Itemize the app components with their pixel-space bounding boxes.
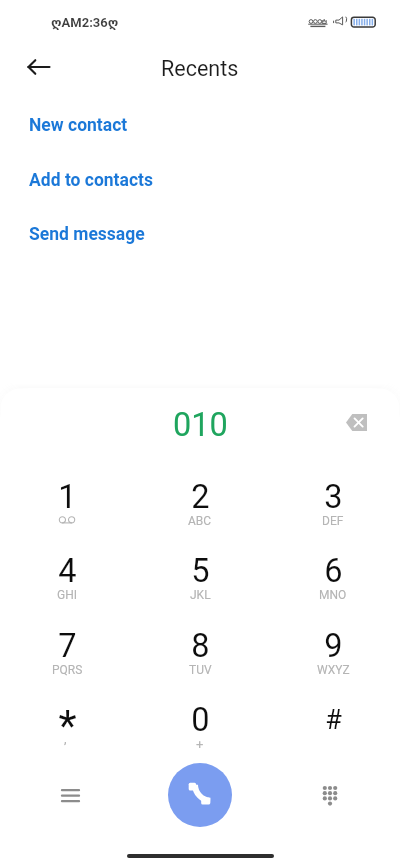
staticText: DEF — [322, 514, 344, 528]
staticText: Add to contacts — [29, 170, 153, 191]
staticText: 7 — [58, 627, 77, 665]
staticText: ABC — [188, 514, 212, 528]
button[interactable]: 7 — [1, 627, 133, 699]
staticText: JKL — [190, 588, 211, 602]
button[interactable]: Call — [168, 763, 232, 827]
staticText: 010 — [173, 406, 228, 444]
staticText: , — [64, 731, 67, 746]
button[interactable]: 0 — [134, 701, 266, 773]
button[interactable]: # — [267, 701, 399, 773]
button[interactable]: Back — [19, 47, 59, 87]
staticText: 4 — [58, 552, 77, 590]
button[interactable]: 2 — [134, 478, 266, 550]
button[interactable]: Add to contacts — [18, 162, 238, 198]
button[interactable]: * — [1, 701, 133, 773]
staticText: 6 — [324, 552, 343, 590]
staticText: 9 — [324, 627, 343, 665]
button[interactable]: 1 — [1, 478, 133, 550]
staticText: Send message — [29, 224, 145, 245]
staticText: 1 — [58, 478, 77, 516]
staticText: 2 — [191, 478, 210, 516]
button[interactable]: 6 — [267, 552, 399, 624]
button[interactable]: Dialpad — [307, 773, 352, 818]
button[interactable]: 4 — [1, 552, 133, 624]
staticText: PQRS — [52, 663, 83, 677]
staticText: 3 — [324, 478, 343, 516]
button[interactable]: 9 — [267, 627, 399, 699]
button[interactable]: 3 — [267, 478, 399, 550]
staticText: TUV — [189, 663, 212, 677]
button[interactable]: New contact — [18, 107, 238, 143]
staticText: 0 — [191, 701, 210, 739]
staticText: ღAM2:36ღ — [51, 15, 119, 30]
staticText: * — [58, 701, 77, 750]
button[interactable]: Send message — [18, 216, 238, 252]
staticText: New contact — [29, 115, 128, 136]
button[interactable]: 5 — [134, 552, 266, 624]
button[interactable]: Call log — [48, 773, 93, 818]
staticText: # — [325, 704, 342, 736]
button[interactable]: 8 — [134, 627, 266, 699]
staticText: WXYZ — [317, 663, 350, 677]
button[interactable]: Backspace — [335, 401, 378, 444]
staticText: 8 — [191, 627, 210, 665]
staticText: + — [196, 737, 204, 752]
staticText: 5 — [191, 552, 210, 590]
staticText: Recents — [161, 56, 239, 81]
staticText: MNO — [319, 588, 347, 602]
staticText: GHI — [57, 588, 77, 602]
